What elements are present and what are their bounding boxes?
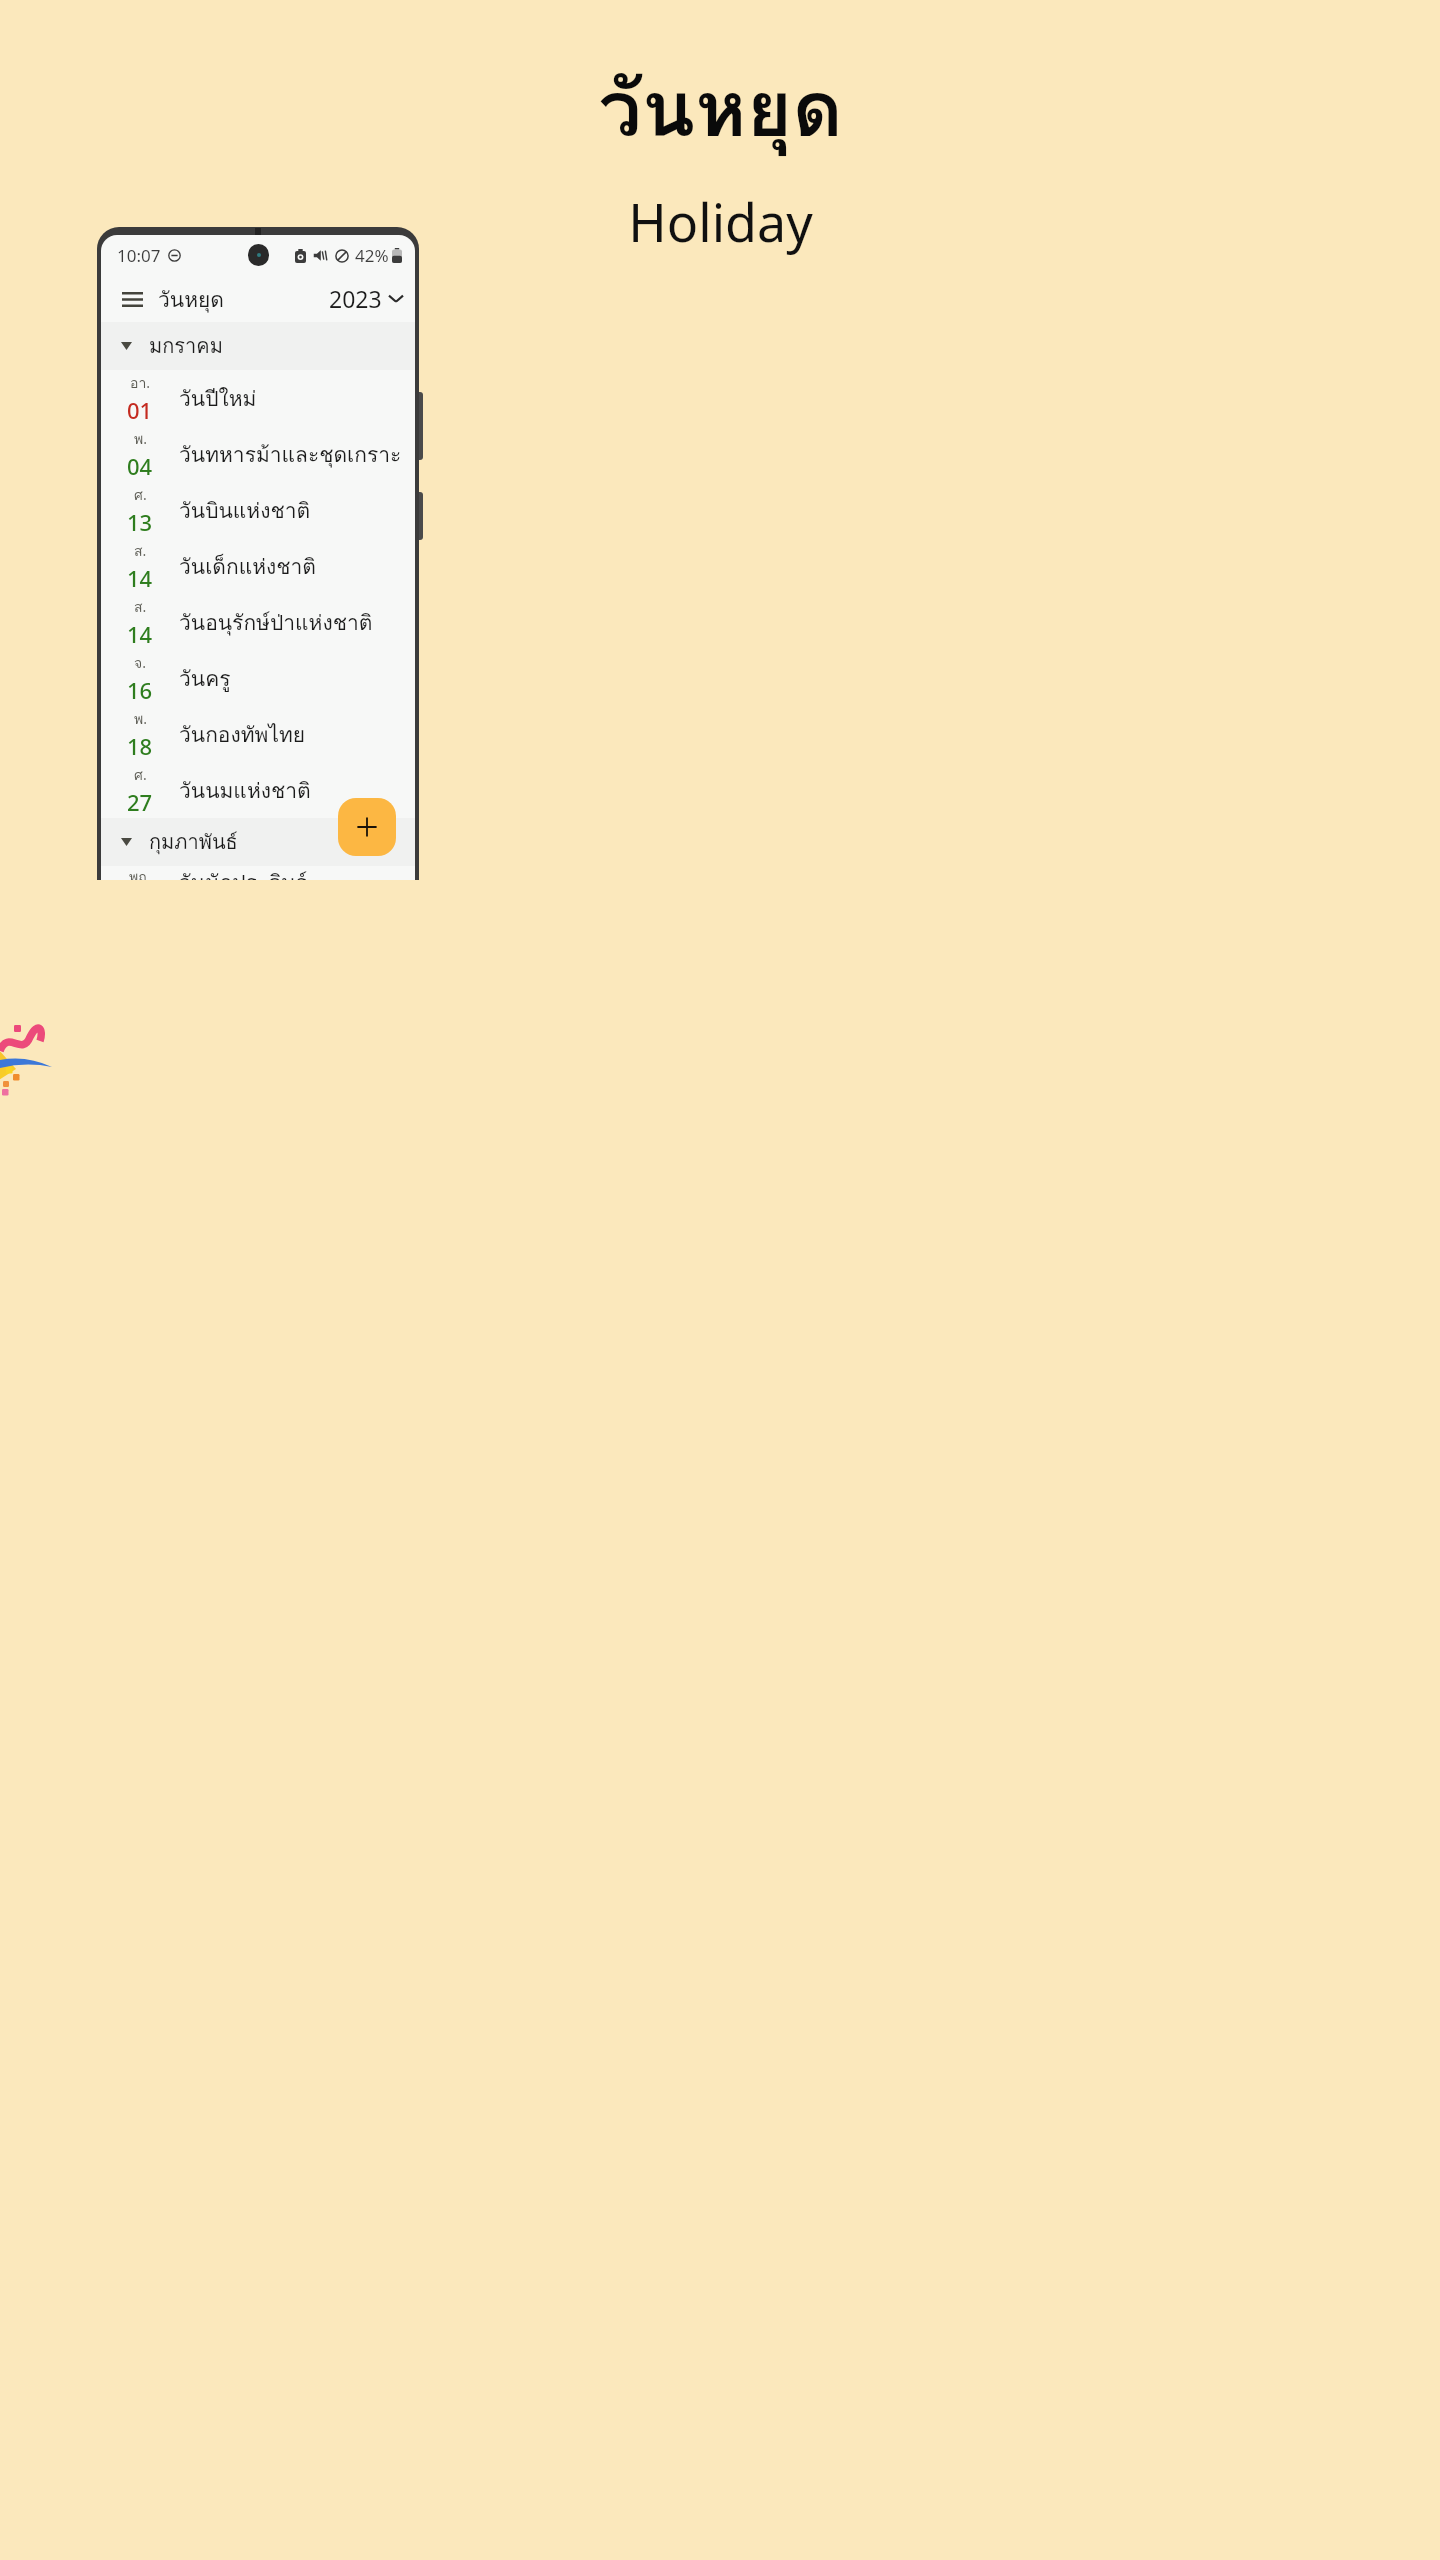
button[interactable]: อา. bbox=[101, 370, 415, 426]
staticText: ศ. bbox=[134, 484, 147, 506]
staticText: พฤ. bbox=[129, 866, 151, 880]
staticText: กุมภาพันธ์ bbox=[149, 826, 238, 858]
staticText: 01 bbox=[127, 395, 153, 425]
button[interactable]: Menu bbox=[112, 279, 152, 319]
button[interactable]: พ. bbox=[101, 426, 415, 482]
staticText: วันกองทัพไทย bbox=[179, 718, 306, 751]
staticText: อา. bbox=[130, 372, 151, 394]
staticText: จ. bbox=[134, 652, 146, 674]
staticText: วันนักประดิษฐ์ bbox=[179, 866, 308, 880]
button[interactable]: จ. bbox=[101, 650, 415, 706]
button[interactable]: กุมภาพันธ์ bbox=[101, 818, 415, 866]
button[interactable]: มกราคม bbox=[101, 322, 415, 370]
button[interactable]: ศ. bbox=[101, 482, 415, 538]
button[interactable]: พฤ. bbox=[101, 866, 415, 880]
staticText: 14 bbox=[127, 619, 153, 649]
staticText: วันเด็กแห่งชาติ bbox=[179, 550, 316, 583]
staticText: 16 bbox=[127, 675, 153, 705]
button[interactable]: 2023 bbox=[329, 283, 403, 314]
staticText: วันบินแห่งชาติ bbox=[179, 494, 311, 527]
staticText: พ. bbox=[134, 428, 147, 450]
button[interactable]: ศ. bbox=[101, 762, 415, 818]
staticText: ส. bbox=[134, 540, 147, 562]
staticText: 42% bbox=[355, 244, 389, 267]
button[interactable]: ส. bbox=[101, 538, 415, 594]
staticText: วันอนุรักษ์ป่าแห่งชาติ bbox=[179, 606, 373, 639]
staticText: ส. bbox=[134, 596, 147, 618]
staticText: วันนมแห่งชาติ bbox=[179, 774, 311, 807]
staticText: 14 bbox=[127, 563, 153, 593]
button[interactable]: ส. bbox=[101, 594, 415, 650]
staticText: พ. bbox=[134, 708, 147, 730]
staticText: 04 bbox=[127, 451, 153, 481]
staticText: วันครู bbox=[179, 662, 231, 695]
staticText: Holiday bbox=[628, 186, 813, 257]
staticText: ศ. bbox=[134, 764, 147, 786]
staticText: วันหยุด bbox=[158, 283, 224, 316]
staticText: 10:07 bbox=[117, 244, 161, 267]
staticText: วันปีใหม่ bbox=[179, 382, 257, 415]
staticText: วันหยุด bbox=[598, 46, 843, 170]
staticText: 13 bbox=[127, 507, 153, 537]
staticText: มกราคม bbox=[149, 330, 223, 362]
staticText: 18 bbox=[127, 731, 153, 761]
button[interactable]: Add holiday bbox=[338, 798, 396, 856]
staticText: 27 bbox=[127, 787, 153, 817]
staticText: วันทหารม้าและชุดเกราะ bbox=[179, 438, 402, 471]
staticText: 2023 bbox=[329, 283, 382, 314]
button[interactable]: พ. bbox=[101, 706, 415, 762]
